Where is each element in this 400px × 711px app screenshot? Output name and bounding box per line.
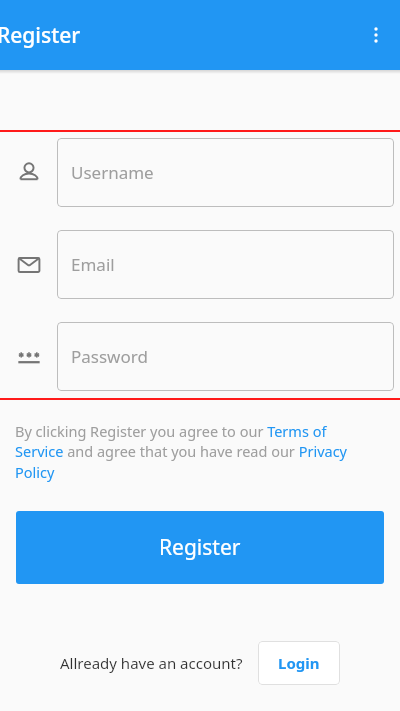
staticText: Register bbox=[0, 21, 81, 50]
button[interactable]: Login bbox=[258, 641, 340, 685]
button[interactable]: Username bbox=[57, 138, 394, 207]
staticText: Register bbox=[159, 533, 241, 562]
staticText: Username bbox=[71, 161, 154, 184]
button[interactable]: Password bbox=[57, 322, 394, 391]
staticText: Email bbox=[71, 253, 115, 276]
button[interactable]: By clicking Register you agree to our Te… bbox=[15, 421, 376, 483]
button[interactable]: Email bbox=[57, 230, 394, 299]
staticText: Password bbox=[71, 345, 148, 368]
staticText: Allready have an account? bbox=[60, 653, 243, 673]
button[interactable]: Register bbox=[16, 511, 384, 584]
staticText: Login bbox=[278, 653, 320, 673]
button[interactable]: More options bbox=[352, 11, 400, 59]
